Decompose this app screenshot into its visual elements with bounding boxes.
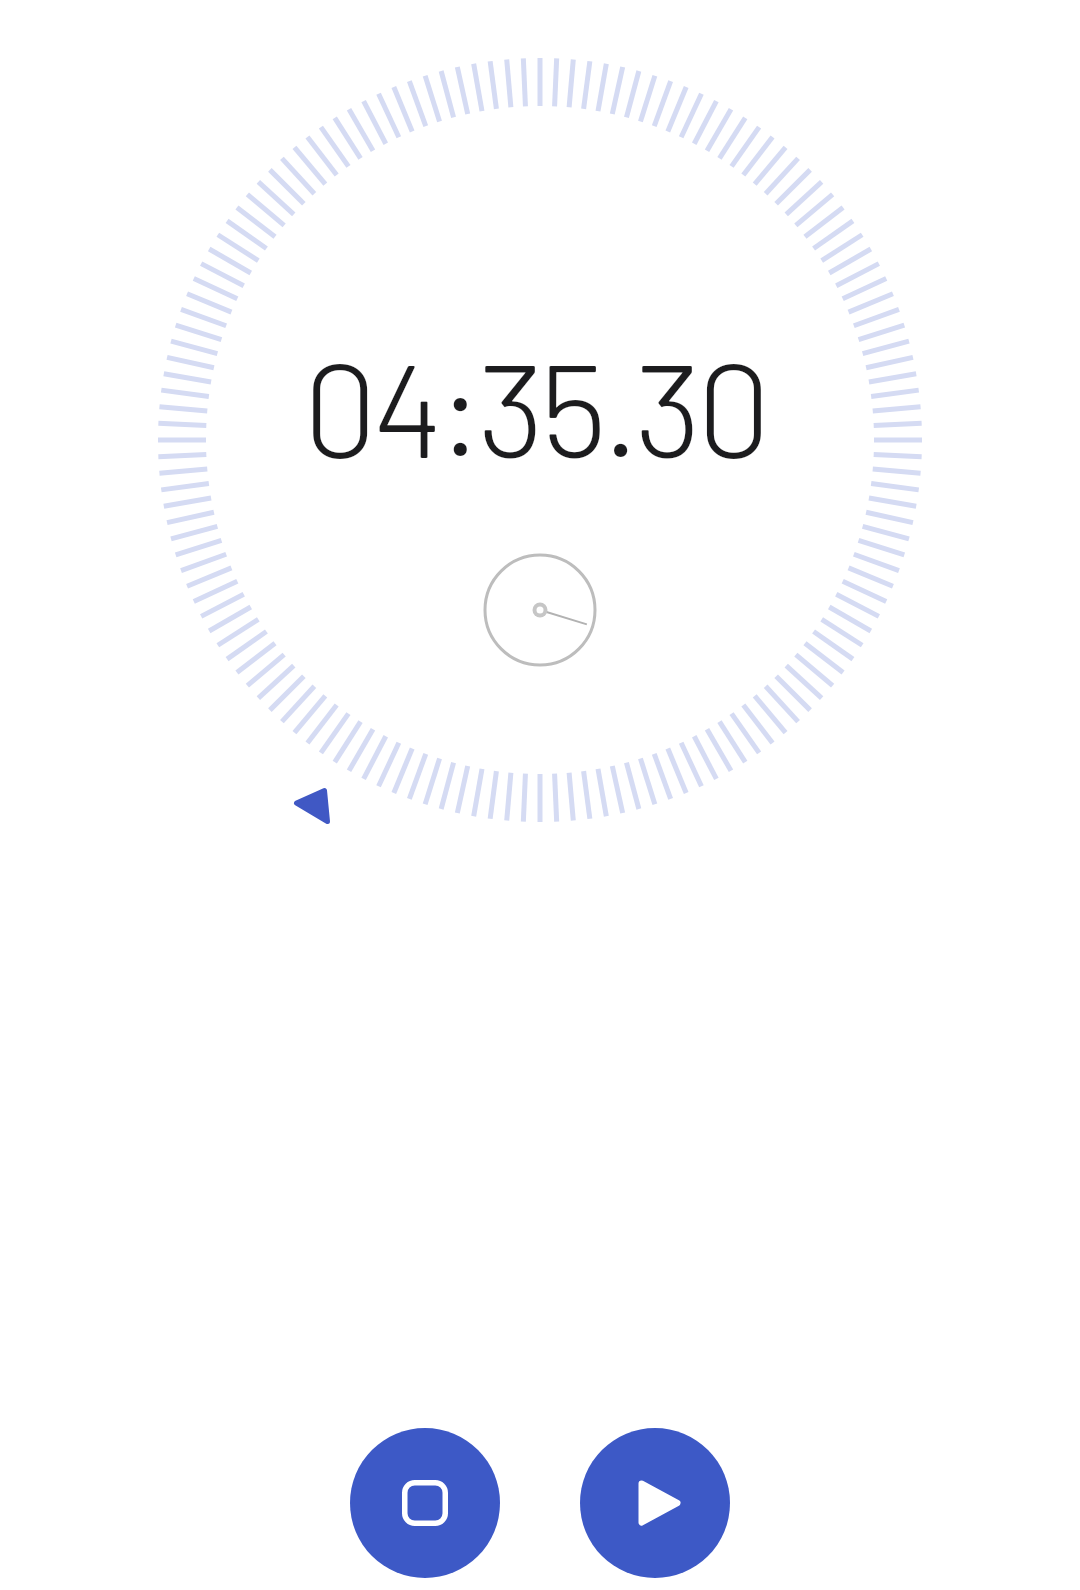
staticText: 04:35.30 [303,326,767,484]
button[interactable] [350,1428,500,1578]
button[interactable] [580,1428,730,1578]
